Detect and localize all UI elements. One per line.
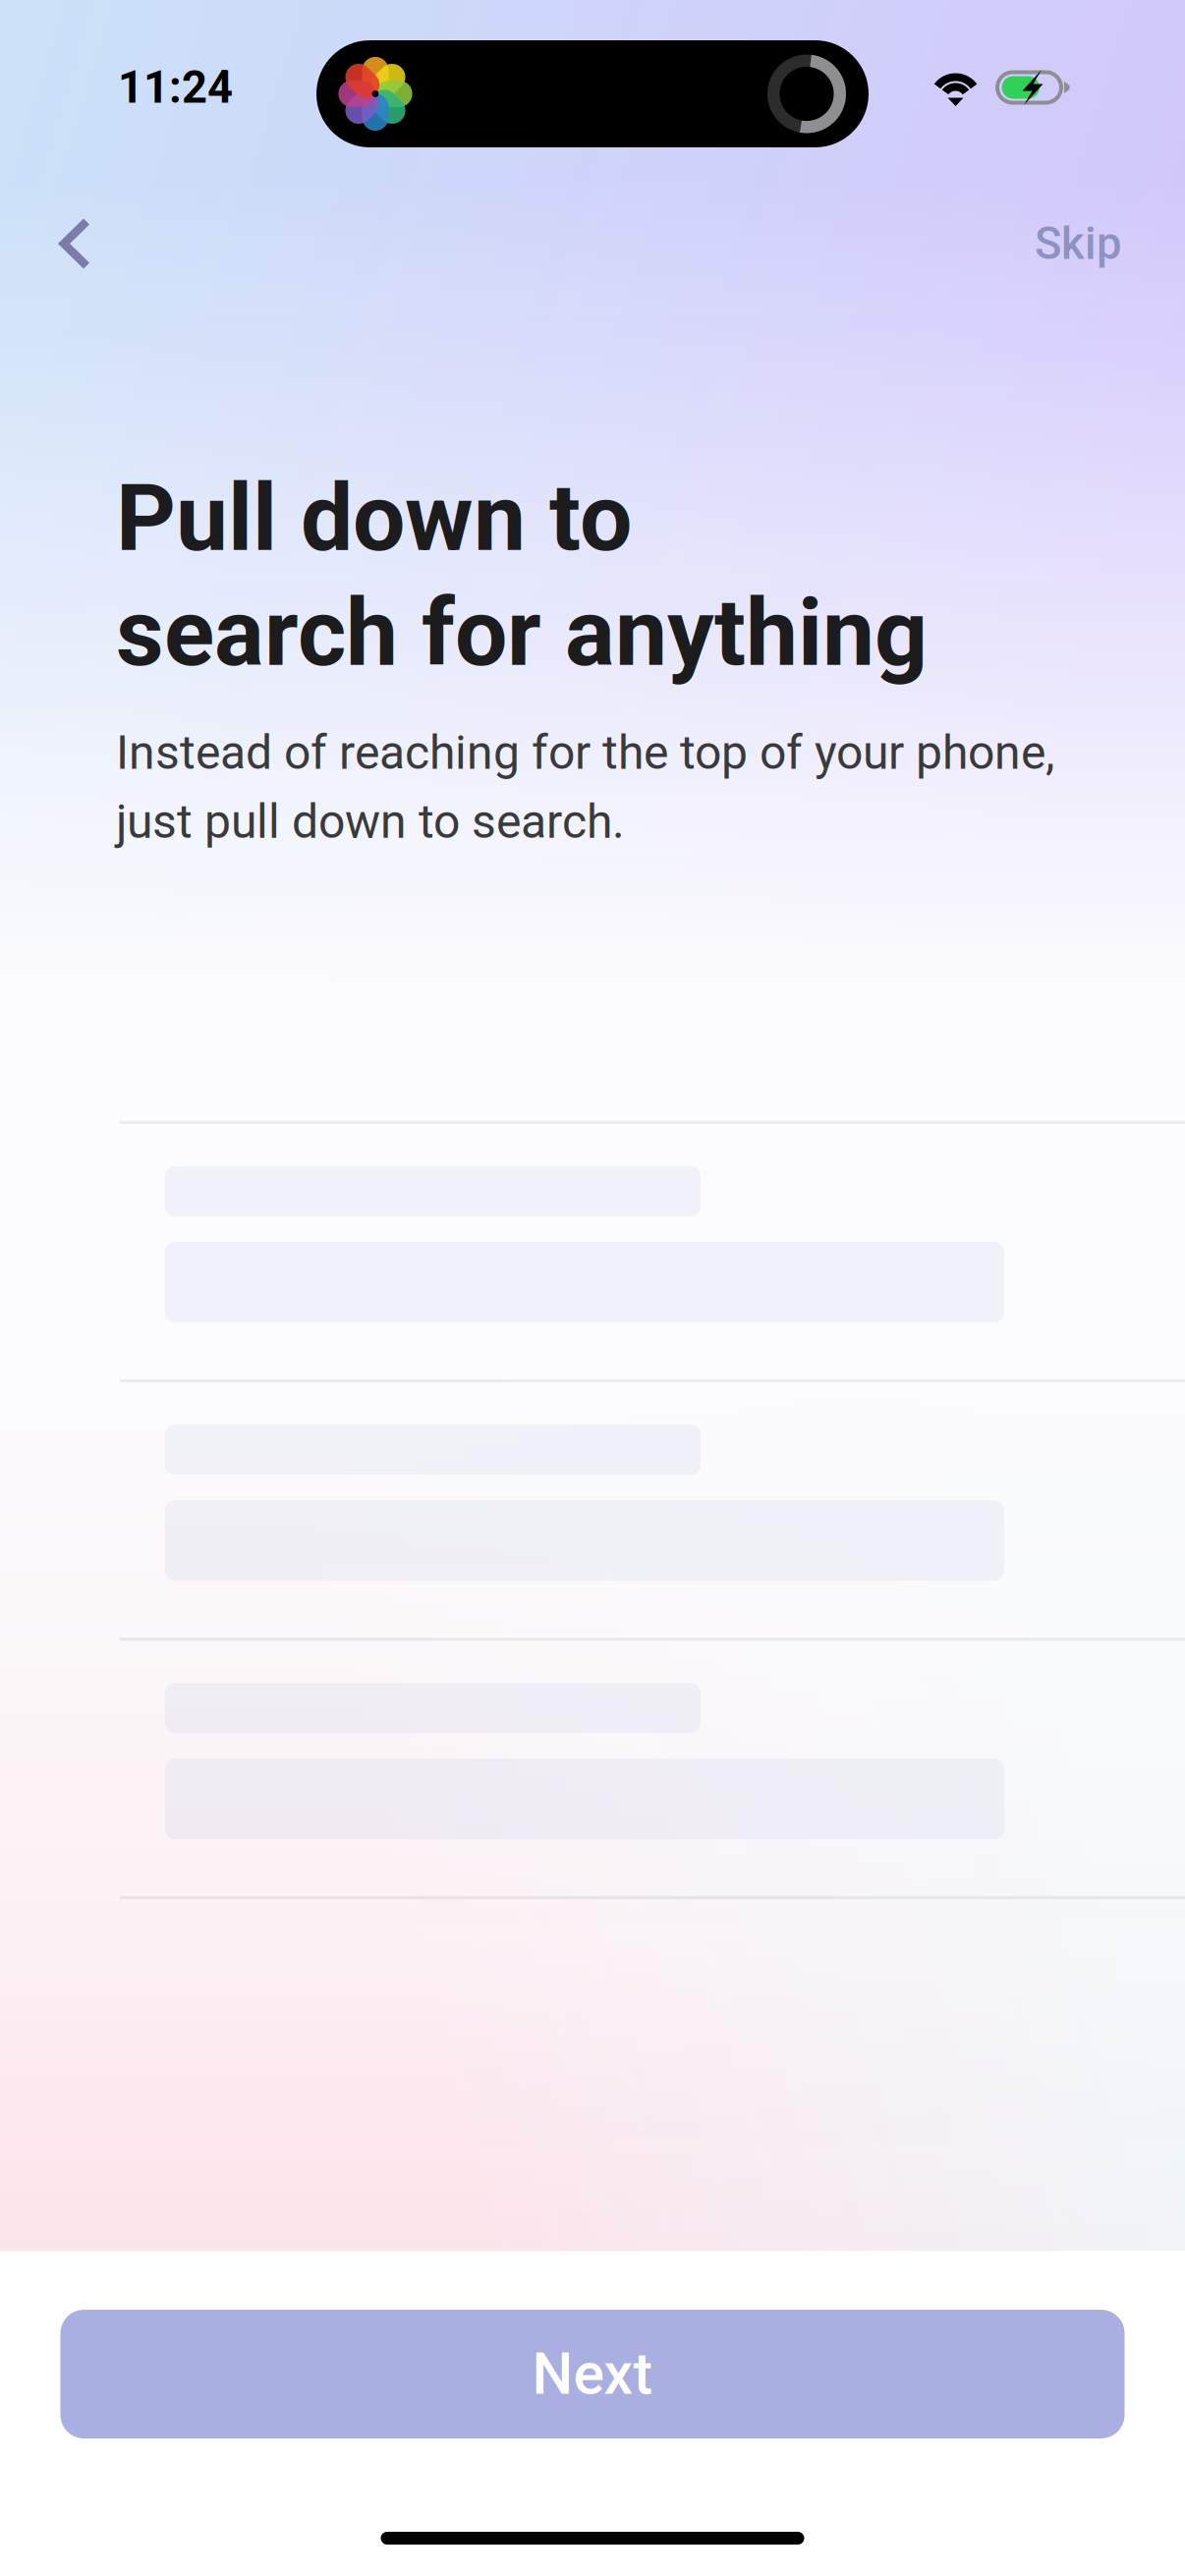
staticText: 11:24 xyxy=(118,61,233,113)
button[interactable]: Next xyxy=(60,2310,1125,2438)
staticText: Instead of reaching for the top of your … xyxy=(116,725,1054,849)
staticText: Skip xyxy=(1035,218,1121,270)
button[interactable]: Back xyxy=(0,153,135,334)
staticText: Next xyxy=(532,2340,653,2408)
button[interactable]: Skip xyxy=(990,153,1185,334)
staticText: Pull down to search for anything xyxy=(116,464,928,688)
